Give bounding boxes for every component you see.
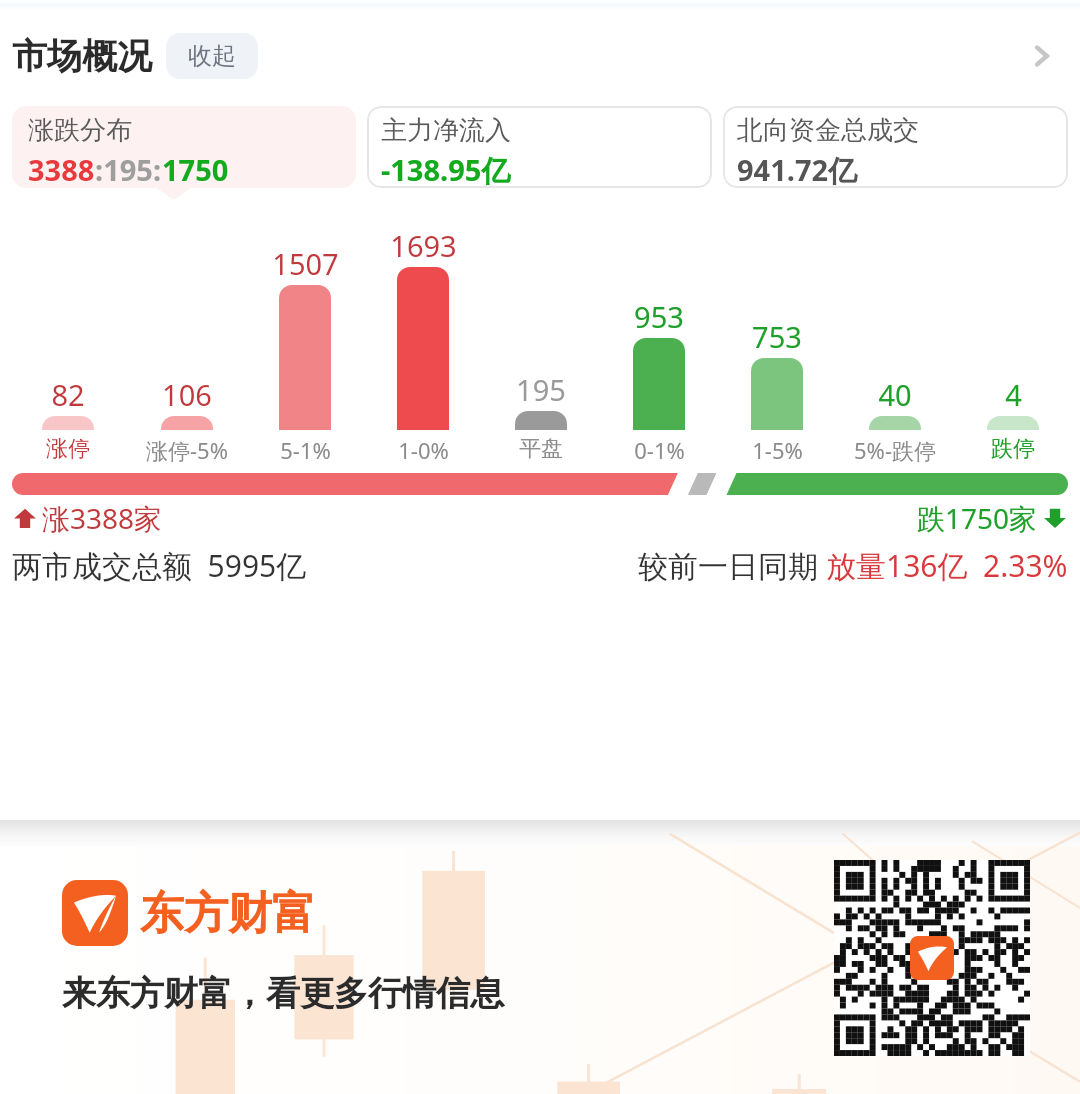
staticText: 5-1% <box>280 435 331 465</box>
staticText: 1507 <box>272 244 339 283</box>
staticText: 来东方财富，看更多行情信息 <box>62 972 504 1015</box>
staticText: 主力净流入 <box>381 114 511 147</box>
staticText: 较前一日同期 <box>638 545 826 586</box>
button[interactable]: 涨跌分布 <box>12 106 356 188</box>
staticText: 跌停 <box>991 435 1035 463</box>
staticText: 涨停-5% <box>146 435 228 465</box>
staticText: 953 <box>634 297 684 336</box>
staticText: :195: <box>95 150 162 188</box>
staticText: -138.95亿 <box>381 150 511 188</box>
staticText: 涨停 <box>46 435 90 463</box>
staticText: 195 <box>516 370 566 409</box>
staticText: 涨跌分布 <box>28 114 132 147</box>
button[interactable]: More <box>1012 26 1072 86</box>
staticText: 涨3388家 <box>42 499 163 537</box>
staticText: 82 <box>51 375 85 414</box>
staticText: 收起 <box>188 41 236 71</box>
staticText: 941.72亿 <box>737 150 858 188</box>
staticText: 40 <box>878 375 912 414</box>
staticText: 5%-跌停 <box>854 435 936 465</box>
staticText: 市场概况 <box>12 34 152 78</box>
staticText: 106 <box>162 375 212 414</box>
staticText: 平盘 <box>519 435 563 463</box>
staticText: 东方财富 <box>140 886 316 941</box>
staticText: 两市成交总额 5995亿 <box>12 545 307 586</box>
staticText: 1750 <box>162 150 229 188</box>
button[interactable]: 主力净流入 <box>367 106 712 188</box>
staticText: 3388 <box>28 150 95 188</box>
button[interactable]: 北向资金总成交 <box>723 106 1068 188</box>
staticText: 753 <box>752 317 802 356</box>
staticText: 北向资金总成交 <box>737 114 919 147</box>
staticText: 0-1% <box>634 435 685 465</box>
staticText: 放量136亿 2.33% <box>826 545 1068 586</box>
staticText: 1693 <box>390 226 457 265</box>
button[interactable]: 收起 <box>166 33 258 79</box>
staticText: 1-0% <box>398 435 449 465</box>
staticText: 1-5% <box>752 435 803 465</box>
staticText: 4 <box>1005 375 1022 414</box>
staticText: 跌1750家 <box>917 499 1038 537</box>
